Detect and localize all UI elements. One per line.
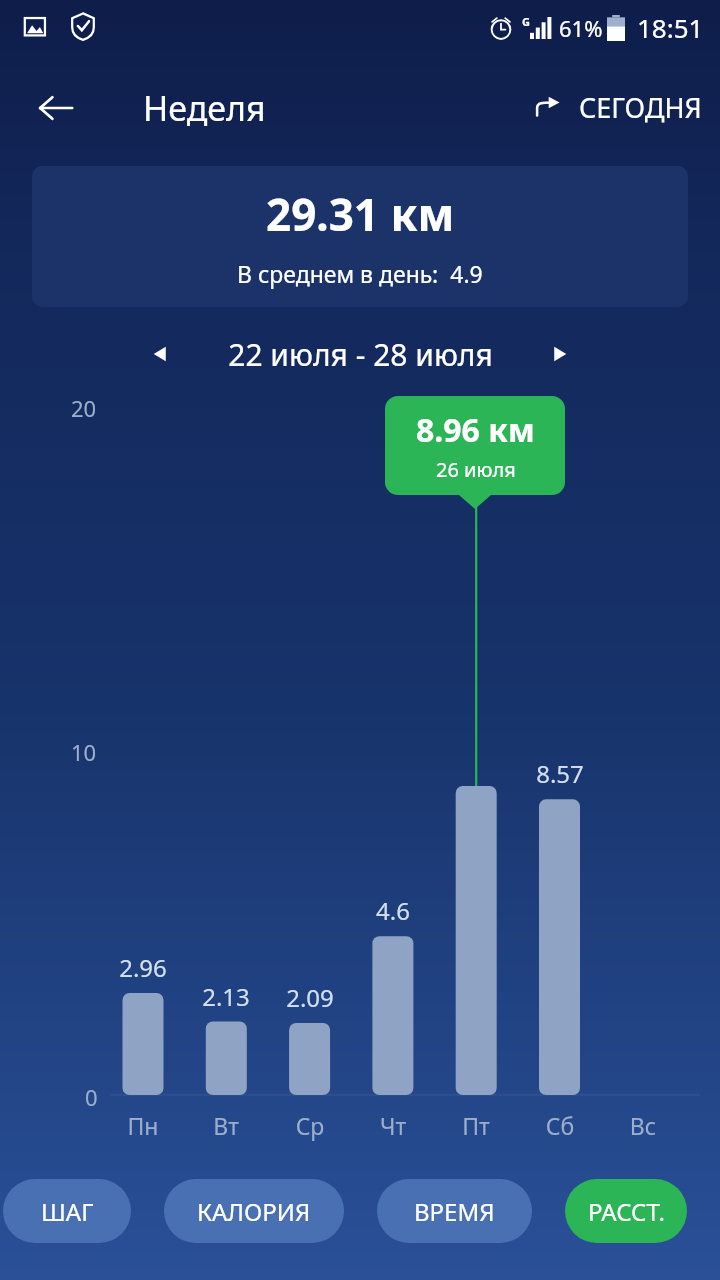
button[interactable]: ВРЕМЯ: [377, 1179, 532, 1243]
staticText: Пт: [431, 1110, 521, 1141]
staticText: РАССТ.: [588, 1195, 665, 1228]
staticText: 10: [71, 737, 97, 767]
staticText: Вт: [181, 1110, 271, 1141]
staticText: Сб: [515, 1110, 605, 1141]
staticText: 2.13: [181, 980, 271, 1013]
button[interactable]: КАЛОРИЯ: [164, 1179, 344, 1243]
staticText: 26 июля: [436, 456, 516, 483]
staticText: ВРЕМЯ: [414, 1195, 495, 1228]
staticText: Пн: [98, 1110, 188, 1141]
staticText: 18:51: [637, 10, 704, 45]
staticText: Вс: [598, 1110, 688, 1141]
staticText: 4.6: [348, 894, 438, 927]
button[interactable]: Previous week: [138, 332, 182, 376]
button[interactable]: 8.96 км: [385, 396, 565, 495]
staticText: 22 июля - 28 июля: [228, 334, 493, 375]
button[interactable]: 29.31 км: [32, 166, 688, 307]
staticText: Неделя: [143, 85, 266, 131]
staticText: ШАГ: [41, 1195, 94, 1228]
button[interactable]: Next week: [538, 332, 582, 376]
button[interactable]: ШАГ: [3, 1179, 131, 1243]
staticText: 2.09: [265, 981, 355, 1014]
staticText: G: [522, 14, 530, 29]
button[interactable]: СЕГОДНЯ: [531, 89, 706, 126]
staticText: 20: [71, 393, 97, 423]
staticText: СЕГОДНЯ: [579, 89, 702, 126]
staticText: 29.31 км: [266, 184, 455, 244]
staticText: 0: [85, 1082, 98, 1112]
staticText: 8.57: [515, 757, 605, 790]
staticText: 2.96: [98, 951, 188, 984]
button[interactable]: Back: [26, 78, 86, 138]
staticText: КАЛОРИЯ: [197, 1195, 311, 1228]
staticText: 61%: [559, 13, 603, 43]
staticText: Ср: [265, 1110, 355, 1141]
button[interactable]: РАССТ.: [565, 1179, 687, 1243]
staticText: Чт: [348, 1110, 438, 1141]
staticText: 8.96 км: [416, 408, 535, 452]
staticText: В среднем в день: 4.9: [237, 258, 483, 289]
